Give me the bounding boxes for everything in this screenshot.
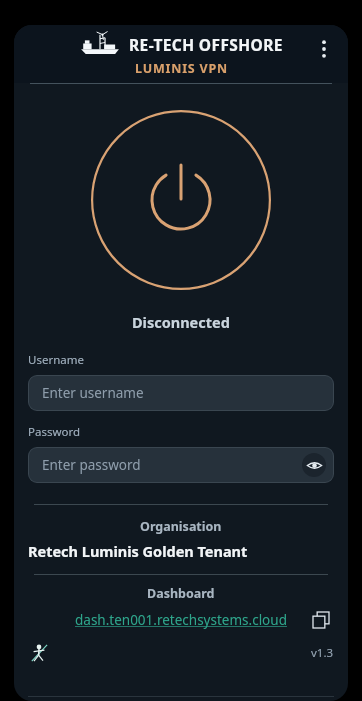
staticText: Retech Luminis Golden Tenant: [28, 541, 334, 561]
button[interactable]: Enter password: [28, 447, 334, 483]
staticText: dash.ten001.retechsystems.cloud: [75, 611, 287, 629]
staticText: Password: [28, 424, 81, 440]
button[interactable]: More options: [306, 31, 342, 67]
staticText: Enter password: [42, 456, 141, 474]
button[interactable]: Diagnostics: [28, 642, 50, 664]
staticText: Username: [28, 352, 84, 368]
button[interactable]: Connect VPN: [90, 109, 272, 291]
button[interactable]: Show password: [302, 453, 326, 477]
button[interactable]: Enter username: [28, 375, 334, 411]
staticText: Organisation: [140, 518, 222, 535]
staticText: Dashboard: [147, 585, 215, 602]
staticText: Enter username: [42, 384, 144, 402]
staticText: LUMINIS VPN: [135, 60, 228, 77]
staticText: Disconnected: [132, 312, 230, 332]
staticText: v1.3: [311, 645, 334, 661]
staticText: RE-TECH OFFSHORE: [129, 34, 283, 55]
button[interactable]: Copy link: [308, 607, 334, 633]
button[interactable]: dash.ten001.retechsystems.cloud: [73, 610, 289, 630]
